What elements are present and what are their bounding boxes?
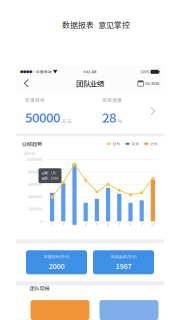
staticText: 团队简报 xyxy=(29,284,49,292)
staticText: 50000 xyxy=(25,107,60,126)
staticText: 2 xyxy=(62,222,64,227)
button[interactable]: 完成金额(万元) xyxy=(93,250,154,274)
staticText: 9:41 AM xyxy=(83,69,96,74)
staticText: 完成金额(万元) xyxy=(110,253,136,259)
staticText: 4 xyxy=(85,222,87,227)
staticText: 5 xyxy=(96,222,98,227)
button[interactable]: 年度目标(万元) xyxy=(26,250,87,274)
staticText: 业绩趋势 xyxy=(22,140,42,147)
staticText: 达标 xyxy=(150,141,158,146)
staticText: 1 xyxy=(51,222,53,227)
staticText: 年度目标(万元) xyxy=(43,253,69,259)
staticText: % xyxy=(118,118,122,125)
staticText: 10000000 xyxy=(26,157,42,162)
staticText: 3 xyxy=(73,222,75,227)
staticText: ●●●●○ xyxy=(20,69,35,74)
staticText: 8 xyxy=(129,222,131,227)
staticText: 7 xyxy=(118,222,120,227)
staticText: 万元 xyxy=(62,118,72,125)
staticText: 10 xyxy=(151,222,155,227)
staticText: 2000 xyxy=(48,260,64,271)
staticText: 6 xyxy=(107,222,109,227)
staticText: 28 xyxy=(102,107,116,126)
button[interactable]: 跟进记录 xyxy=(99,300,158,320)
staticText: 100% xyxy=(140,69,149,74)
staticText: 01/2018 xyxy=(145,80,159,86)
staticText: 金额：1000 xyxy=(41,176,58,181)
button[interactable]: 选择月份 xyxy=(136,77,161,89)
staticText: 目标 xyxy=(112,141,120,146)
staticText: 中国移动 xyxy=(36,69,52,74)
staticText: 6000000 xyxy=(28,182,42,187)
staticText: 0 xyxy=(40,219,42,224)
staticText: (单位/元) xyxy=(23,151,35,156)
staticText: 年度目标 xyxy=(25,96,45,103)
staticText: 数据报表 意见掌控 xyxy=(62,19,130,30)
button[interactable]: 年度目标 xyxy=(16,89,164,133)
staticText: 团队业绩 xyxy=(76,78,104,89)
staticText: 日期：1月 xyxy=(41,171,55,175)
staticText: 4000000 xyxy=(28,194,42,199)
button[interactable]: Back xyxy=(19,77,34,89)
button[interactable]: 新增客户 xyxy=(30,300,89,320)
staticText: 2000000 xyxy=(28,207,42,211)
staticText: 8000000 xyxy=(28,170,42,174)
staticText: 完成进度 xyxy=(102,96,122,103)
staticText: 完成 xyxy=(131,141,139,146)
staticText: 9 xyxy=(141,222,143,227)
staticText: 1987 xyxy=(115,260,131,271)
